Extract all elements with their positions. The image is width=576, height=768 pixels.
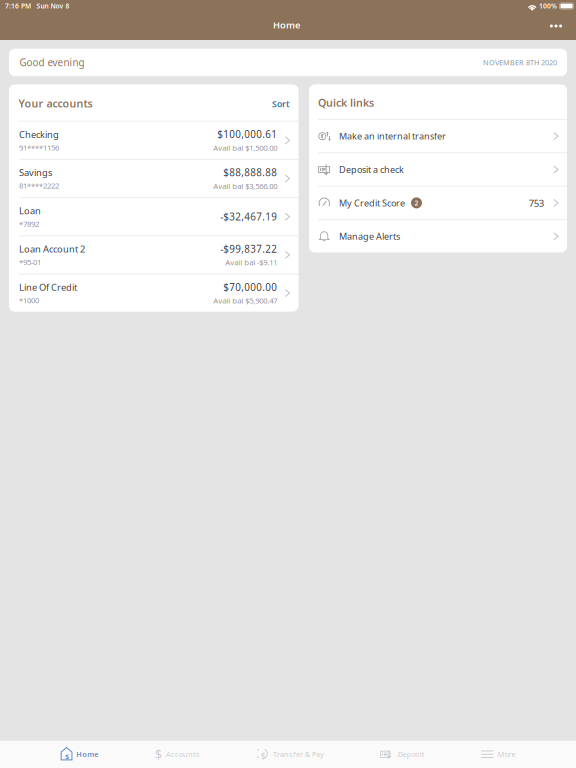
staticText: Avail bal $3,566.00 <box>213 181 277 191</box>
staticText: 100% <box>539 1 557 11</box>
staticText: Transfer & Pay <box>273 749 324 759</box>
staticText: Manage Alerts <box>339 230 400 242</box>
staticText: $70,000.00 <box>223 280 277 294</box>
staticText: *1000 <box>19 295 39 305</box>
staticText: 7:16 PM <box>5 1 31 11</box>
button[interactable]: Checking <box>9 122 298 159</box>
staticText: Line Of Credit <box>19 281 77 293</box>
staticText: Accounts <box>166 749 200 759</box>
staticText: Avail bal $1,500.00 <box>213 142 277 153</box>
button[interactable]: $ <box>61 740 98 768</box>
staticText: Your accounts <box>18 96 92 111</box>
button[interactable]: Sort <box>272 98 290 111</box>
staticText: $ <box>65 751 69 761</box>
staticText: $88,888.88 <box>223 166 277 179</box>
staticText: Savings <box>19 166 52 179</box>
button[interactable]: Loan Account 2 <box>9 236 298 273</box>
button[interactable]: Deposit a check <box>309 153 567 186</box>
staticText: -$32,467.19 <box>220 210 277 223</box>
button[interactable]: My Credit Score <box>309 187 567 219</box>
staticText: NOVEMBER 8TH 2020 <box>483 57 557 67</box>
staticText: $ <box>261 750 266 762</box>
staticText: 2 <box>414 198 418 207</box>
button[interactable]: Loan <box>9 198 298 235</box>
staticText: Good evening <box>19 56 84 69</box>
staticText: Sun Nov 8 <box>36 1 69 11</box>
staticText: 91****1156 <box>19 142 59 153</box>
staticText: Quick links <box>318 95 374 110</box>
staticText: *95-01 <box>19 257 41 267</box>
staticText: -$99,837.22 <box>220 242 277 256</box>
staticText: Home <box>273 19 300 31</box>
staticText: Home <box>76 749 98 759</box>
staticText: Avail bal $5,900.47 <box>213 295 277 306</box>
staticText: Make an internal transfer <box>339 130 446 142</box>
button[interactable]: $ <box>154 740 200 768</box>
staticText: Checking <box>19 128 59 141</box>
staticText: Avail bal -$9.11 <box>225 257 277 268</box>
staticText: Loan Account 2 <box>19 242 85 255</box>
staticText: $100,000.61 <box>217 128 277 141</box>
staticText: $ <box>155 745 162 763</box>
button[interactable]: Deposit <box>380 740 425 768</box>
staticText: 81****2222 <box>19 180 59 191</box>
staticText: Deposit a check <box>339 163 404 176</box>
button[interactable]: $ <box>256 740 324 768</box>
staticText: 753 <box>529 196 544 209</box>
button[interactable]: Savings <box>9 160 298 197</box>
staticText: Sort <box>272 98 290 110</box>
button[interactable]: More <box>481 740 515 768</box>
staticText: Loan <box>19 204 41 217</box>
staticText: *7892 <box>19 218 39 229</box>
button[interactable]: Make an internal transfer <box>309 120 567 152</box>
button[interactable]: Line Of Credit <box>9 274 298 312</box>
button[interactable]: Manage Alerts <box>309 220 567 252</box>
staticText: More <box>497 749 515 759</box>
button[interactable]: More options <box>539 15 573 37</box>
staticText: My Credit Score <box>339 197 405 209</box>
staticText: Deposit <box>398 749 425 759</box>
